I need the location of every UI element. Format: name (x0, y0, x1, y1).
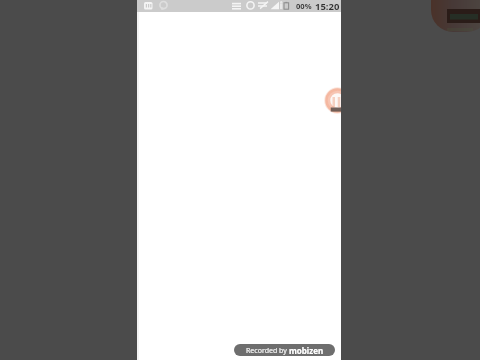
button[interactable]: Mobizen recorder (325, 88, 341, 113)
staticText: Recorded by (246, 346, 289, 356)
staticText: 00% (296, 1, 312, 11)
staticText: mobizen (289, 345, 324, 356)
staticText: 15:20 (315, 0, 340, 12)
